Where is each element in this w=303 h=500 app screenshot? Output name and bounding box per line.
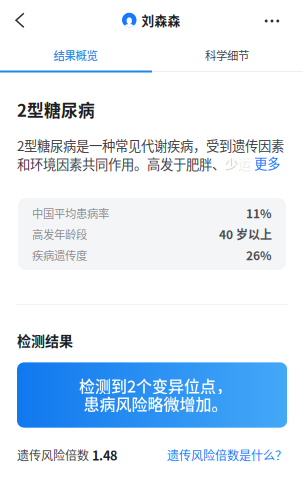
staticText: 更多 xyxy=(254,153,280,173)
staticText: 结果概览 xyxy=(53,47,97,63)
staticText: 患病风险略微增加。 xyxy=(83,392,227,415)
staticText: 检测结果 xyxy=(17,330,73,350)
staticText: 和环境因素共同作用。高发于肥胖、 xyxy=(17,154,225,173)
staticText: 疾病遗传度 xyxy=(32,247,87,263)
staticText: 高发年龄段 xyxy=(32,226,87,242)
button[interactable]: 结果概览 xyxy=(0,39,151,71)
button[interactable]: Back xyxy=(0,0,40,40)
staticText: 中国平均患病率 xyxy=(32,205,109,221)
staticText: 运 xyxy=(238,154,251,173)
staticText: 遗传风险倍数是什么？ xyxy=(167,446,287,464)
staticText: 刘森森 xyxy=(141,11,180,29)
staticText: 少 xyxy=(225,154,238,173)
button[interactable]: 科学细节 xyxy=(151,39,303,71)
button[interactable]: 更多 xyxy=(254,154,284,172)
staticText: 40 岁以上 xyxy=(219,225,272,243)
staticText: 遗传风险倍数 xyxy=(17,446,92,464)
staticText: 2型糖尿病是一种常见代谢疾病，受到遗传因素 xyxy=(17,135,284,155)
button[interactable]: 遗传风险倍数是什么？ xyxy=(167,446,287,464)
staticText: 2型糖尿病 xyxy=(17,97,95,122)
staticText: 科学细节 xyxy=(205,47,249,63)
staticText: 1.48 xyxy=(92,446,117,464)
staticText: 检测到2个变异位点， xyxy=(79,374,232,397)
staticText: 26% xyxy=(246,246,272,264)
staticText: 11% xyxy=(246,204,272,222)
button[interactable]: More options xyxy=(252,1,292,41)
